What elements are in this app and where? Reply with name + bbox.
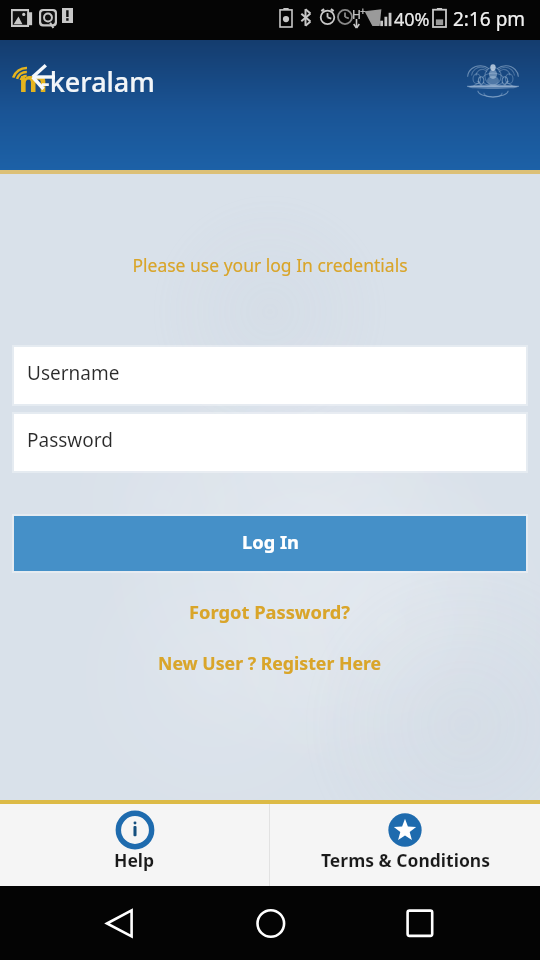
staticText: Terms & Conditions — [321, 848, 490, 872]
staticText: Forgot Password? — [189, 599, 351, 624]
button[interactable]: Password — [14, 414, 526, 471]
button[interactable]: Log In — [14, 516, 526, 571]
button[interactable]: Back — [100, 904, 140, 944]
button[interactable]: Help — [0, 804, 269, 886]
button[interactable]: Terms & Conditions — [270, 804, 540, 886]
button[interactable]: New User ? Register Here — [0, 649, 540, 677]
staticText: m — [19, 61, 48, 100]
button[interactable]: Username — [14, 347, 526, 404]
staticText: 40% — [394, 7, 430, 32]
button[interactable]: Forgot Password? — [0, 597, 540, 625]
staticText: New User ? Register Here — [158, 651, 382, 675]
staticText: Please use your log In credentials — [0, 253, 540, 277]
button[interactable]: Recent apps — [400, 904, 440, 944]
staticText: Username — [27, 360, 120, 386]
staticText: H — [352, 6, 361, 22]
button[interactable]: Back — [32, 65, 55, 89]
staticText: -keralam — [41, 63, 155, 100]
staticText: Log In — [242, 529, 299, 554]
staticText: Password — [27, 427, 113, 453]
staticText: + — [360, 4, 366, 18]
button[interactable]: Home — [251, 904, 291, 944]
staticText: 2:16 pm — [453, 6, 526, 32]
staticText: Help — [114, 848, 155, 872]
